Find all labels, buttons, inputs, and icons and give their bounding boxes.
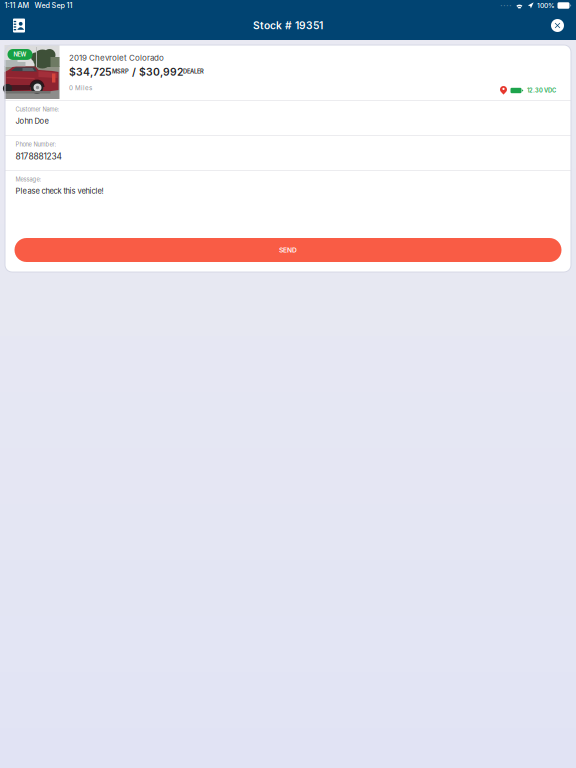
staticText: Message: (15, 176, 41, 183)
staticText: 8178881234 (15, 151, 61, 162)
staticText: MSRP (112, 68, 129, 75)
button[interactable]: Close (545, 12, 570, 39)
button[interactable]: Contacts (6, 11, 32, 39)
staticText: 2019 Chevrolet Colorado (69, 53, 164, 63)
staticText: 1:11 AM (4, 1, 29, 10)
staticText: John Doe (15, 116, 48, 126)
staticText: NEW (13, 51, 26, 58)
staticText: Customer Name: (15, 106, 59, 113)
staticText: • • • • (500, 3, 511, 8)
staticText: SEND (279, 246, 297, 254)
staticText: $34,725 (69, 66, 112, 78)
staticText: Stock # 19351 (253, 19, 323, 32)
staticText: 0 Miles (69, 84, 92, 92)
staticText: 12.30 VDC (527, 87, 556, 94)
staticText: DEALER (183, 68, 204, 75)
staticText: 100% (537, 1, 555, 10)
staticText: Phone Number: (15, 141, 56, 148)
staticText: Please check this vehicle! (15, 186, 103, 196)
staticText: Wed Sep 11 (34, 1, 72, 10)
button[interactable]: SEND (14, 238, 561, 262)
staticText: / (129, 66, 139, 78)
staticText: $30,992 (139, 66, 183, 78)
